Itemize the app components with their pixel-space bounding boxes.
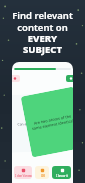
button[interactable]: Are two atoms of the same element identi…	[21, 86, 73, 158]
staticText: I don't know	[15, 174, 32, 178]
staticText: OK	[41, 174, 45, 178]
button[interactable]: OK	[35, 166, 49, 179]
button[interactable]: I don't know	[14, 166, 32, 179]
staticText: Find relevant content on EVERY SUBJECT	[4, 9, 81, 56]
button[interactable]: Hard count	[12, 75, 20, 82]
button[interactable]: Easy count	[66, 75, 73, 82]
staticText: I know it	[56, 174, 68, 178]
button[interactable]: I know it	[52, 166, 71, 179]
staticText: Are two atoms of the same element identi…	[30, 113, 73, 131]
staticText: Can an atom be split?	[17, 120, 52, 127]
button[interactable]: Can an atom be split?	[12, 93, 61, 153]
